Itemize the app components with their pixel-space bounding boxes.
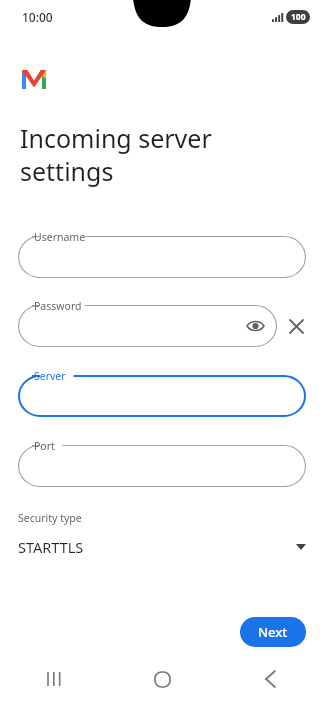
button[interactable]: Next xyxy=(240,617,306,647)
button[interactable]: Password xyxy=(18,305,277,347)
staticText: Server xyxy=(34,369,66,383)
button[interactable]: Back xyxy=(216,656,324,702)
button[interactable]: Security type xyxy=(18,511,306,557)
button[interactable]: Recents xyxy=(0,656,108,702)
staticText: Security type xyxy=(18,511,82,525)
staticText: 10:00 xyxy=(22,9,53,25)
button[interactable]: Show password xyxy=(243,314,267,338)
button[interactable]: Server xyxy=(18,375,306,417)
button[interactable]: Clear xyxy=(282,312,310,340)
button[interactable]: Home xyxy=(108,656,216,702)
button[interactable]: Username xyxy=(18,236,306,278)
staticText: Password xyxy=(34,299,82,313)
button[interactable]: Port xyxy=(18,445,306,487)
staticText: 100 xyxy=(291,11,306,23)
staticText: Next xyxy=(258,623,288,641)
staticText: Port xyxy=(34,439,55,453)
staticText: Username xyxy=(34,230,86,244)
staticText: Incoming server settings xyxy=(20,121,310,188)
staticText: STARTTLS xyxy=(18,537,84,557)
